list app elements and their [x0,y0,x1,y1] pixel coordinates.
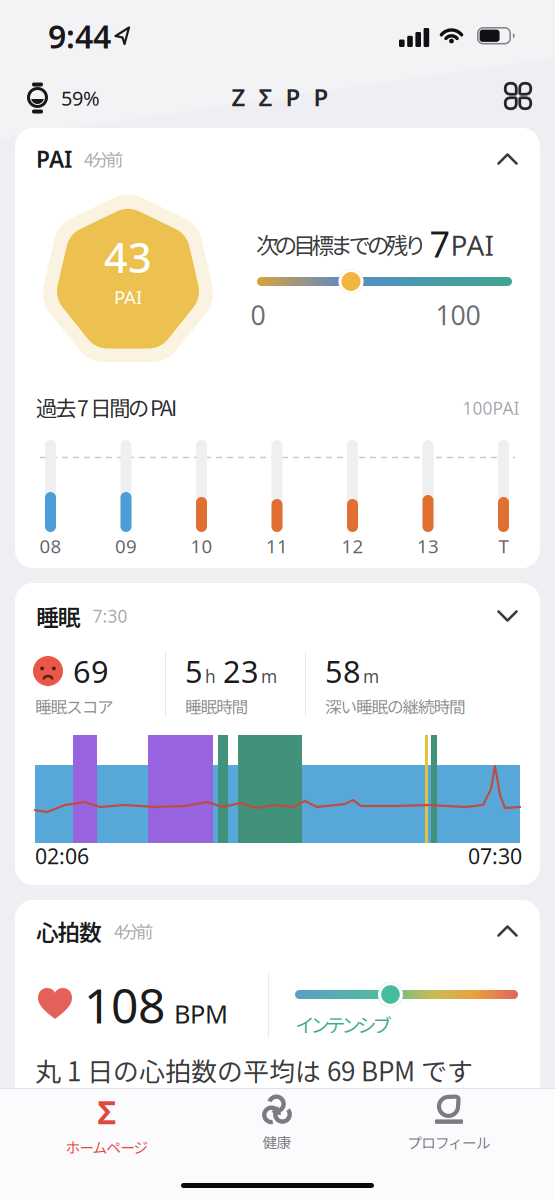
staticText: BPM [174,997,228,1031]
staticText: 丸 1 日の心拍数の平均は 69 BPM です [35,1051,473,1089]
staticText: 100 [435,297,480,333]
button[interactable]: 睡眠 [15,583,540,885]
staticText: 09 [115,534,137,558]
staticText: 11 [266,534,288,558]
staticText: m [363,665,379,688]
staticText: 02:06 [35,842,89,870]
staticText: 58 [325,651,361,691]
staticText: ZΣPP [231,81,328,113]
staticText: 過去 7 日間の PAI [36,392,177,422]
staticText: h [205,665,221,688]
staticText: 0 [250,297,265,333]
staticText: 08 [39,534,61,558]
staticText: PAI [36,144,72,174]
staticText: 108 [84,973,165,1037]
staticText: 心拍数 [36,915,102,947]
staticText: 69 [73,651,109,691]
staticText: 43 [104,230,152,284]
staticText: 59% [61,85,100,111]
staticText: 7 [429,220,450,267]
staticText: T [498,534,508,558]
staticText: 次の目標までの残り [256,228,427,260]
staticText: 13 [417,534,439,558]
staticText: Σ [97,1091,116,1133]
button[interactable]: Expand [497,609,518,622]
staticText: 10 [190,534,212,558]
button[interactable]: Apps [505,83,531,109]
staticText: 4分前 [84,146,123,172]
staticText: 100PAI [462,396,519,419]
staticText: 7:30 [92,604,127,627]
staticText: 23 [223,651,259,691]
staticText: 4分前 [114,918,153,944]
staticText: 07:30 [468,842,522,870]
button[interactable]: PAI [15,128,540,568]
staticText: 睡眠スコア [35,694,114,718]
staticText: PAI [450,226,493,264]
button[interactable]: Collapse [497,152,518,165]
staticText: 睡眠時間 [185,694,248,718]
staticText: 5 [185,651,203,691]
staticText: PAI [114,285,142,309]
staticText: 9:44 [48,15,111,57]
staticText: 深い睡眠の継続時間 [325,694,466,718]
button[interactable]: 健康 [202,1094,352,1154]
staticText: 健康 [262,1131,291,1152]
staticText: 12 [341,534,363,558]
button[interactable]: Collapse [497,924,518,937]
staticText: ホームページ [65,1136,148,1157]
button[interactable]: Watch battery [27,82,100,113]
staticText: インテンシブ [295,1010,391,1038]
button[interactable]: 心拍数 [15,900,540,1200]
button[interactable]: Σ [32,1094,182,1154]
staticText: プロフィール [407,1131,491,1153]
button[interactable]: プロフィール [374,1094,524,1154]
staticText: m [261,665,277,688]
staticText: 睡眠 [36,600,80,632]
